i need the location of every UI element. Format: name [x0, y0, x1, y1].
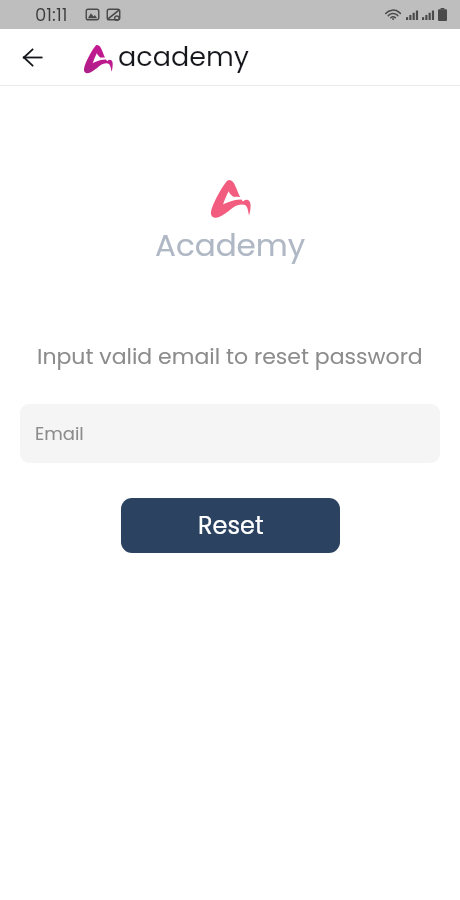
button[interactable]: Reset — [121, 498, 340, 553]
button[interactable]: Email — [20, 404, 440, 463]
staticText: Input valid email to reset password — [37, 341, 423, 372]
button[interactable]: Back — [12, 37, 52, 77]
staticText: Academy — [155, 223, 306, 266]
staticText: academy — [118, 38, 249, 76]
staticText: 01:11 — [35, 2, 68, 27]
staticText: Email — [35, 421, 84, 446]
staticText: Reset — [198, 509, 264, 543]
